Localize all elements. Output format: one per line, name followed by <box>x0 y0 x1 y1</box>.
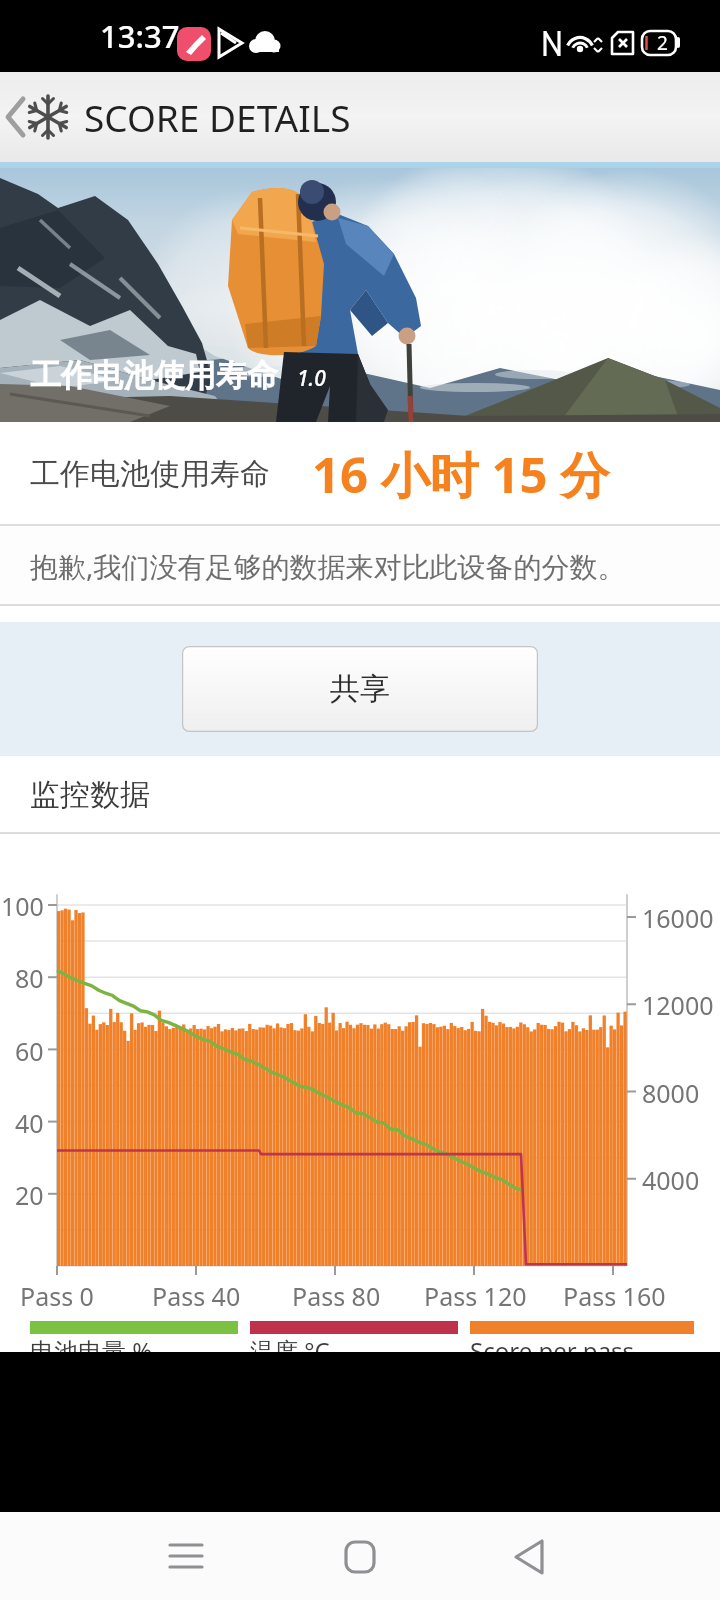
staticText: 共享 <box>330 670 390 708</box>
staticText: 16000 <box>642 901 714 935</box>
staticText: Score per pass <box>470 1334 635 1352</box>
staticText: 60 <box>15 1034 44 1068</box>
staticText: 12000 <box>642 988 714 1022</box>
staticText: 监控数据 <box>30 776 150 814</box>
staticText: Pass 0 <box>20 1279 94 1313</box>
button[interactable] <box>0 72 34 162</box>
staticText: Pass 40 <box>152 1279 241 1313</box>
staticText: 工作电池使用寿命 <box>30 356 278 395</box>
staticText: Pass 160 <box>563 1279 666 1313</box>
staticText: 80 <box>15 961 44 995</box>
staticText: 工作电池使用寿命 <box>30 455 270 493</box>
staticText: 8000 <box>642 1076 700 1110</box>
staticText: SCORE DETAILS <box>84 92 351 142</box>
button[interactable] <box>156 1526 216 1586</box>
button[interactable]: 共享 <box>182 646 538 732</box>
button[interactable] <box>330 1526 390 1586</box>
staticText: Pass 80 <box>292 1279 381 1313</box>
button[interactable] <box>500 1526 560 1586</box>
staticText: 40 <box>15 1106 44 1140</box>
staticText: 2 <box>657 30 668 56</box>
staticText: 1.0 <box>297 364 326 393</box>
staticText: 电池电量 % <box>30 1334 153 1352</box>
staticText: 抱歉,我们没有足够的数据来对比此设备的分数。 <box>30 547 626 585</box>
staticText: 4000 <box>642 1163 700 1197</box>
staticText: 20 <box>15 1178 44 1212</box>
staticText: 16 小时 15 分 <box>312 441 610 508</box>
staticText: 13:37 <box>100 15 180 57</box>
staticText: 温度 °C <box>250 1334 330 1352</box>
staticText: Pass 120 <box>424 1279 527 1313</box>
staticText: 100 <box>1 889 44 923</box>
